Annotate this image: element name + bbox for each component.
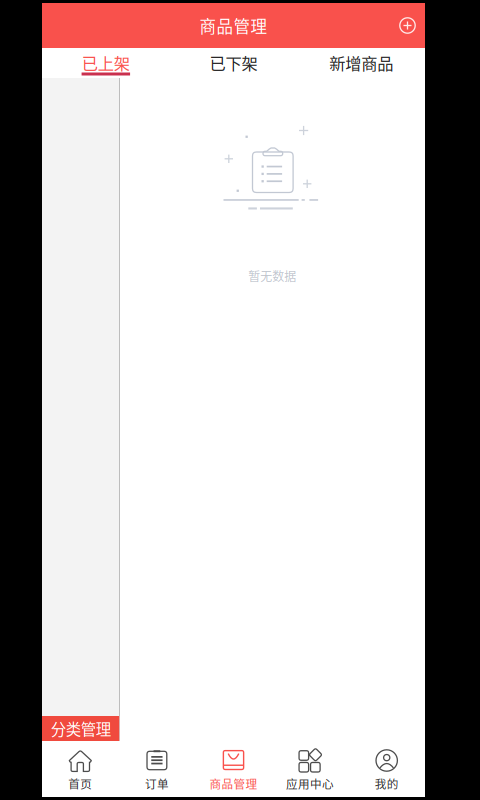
button[interactable]: 分类管理	[42, 716, 119, 741]
staticText: 已上架	[82, 51, 130, 75]
staticText: 分类管理	[51, 717, 111, 740]
button[interactable]: 应用中心	[272, 741, 348, 797]
button[interactable]: 我的	[348, 741, 425, 797]
staticText: 商品管理	[199, 13, 267, 37]
staticText: 新增商品	[329, 51, 393, 75]
button[interactable]: 首页	[42, 741, 119, 797]
button[interactable]: 新增商品	[297, 48, 425, 78]
button[interactable]: 已上架	[42, 48, 170, 78]
button[interactable]: 订单	[119, 741, 195, 797]
staticText: 订单	[145, 775, 169, 792]
staticText: 暂无数据	[248, 267, 296, 284]
button[interactable]: 已下架	[170, 48, 297, 78]
button[interactable]: 商品管理	[195, 741, 272, 797]
staticText: 我的	[375, 775, 399, 792]
staticText: 应用中心	[286, 775, 334, 792]
staticText: 首页	[68, 775, 92, 792]
button[interactable]: 新增商品	[390, 5, 425, 46]
staticText: 商品管理	[209, 775, 257, 792]
staticText: 已下架	[209, 51, 257, 75]
